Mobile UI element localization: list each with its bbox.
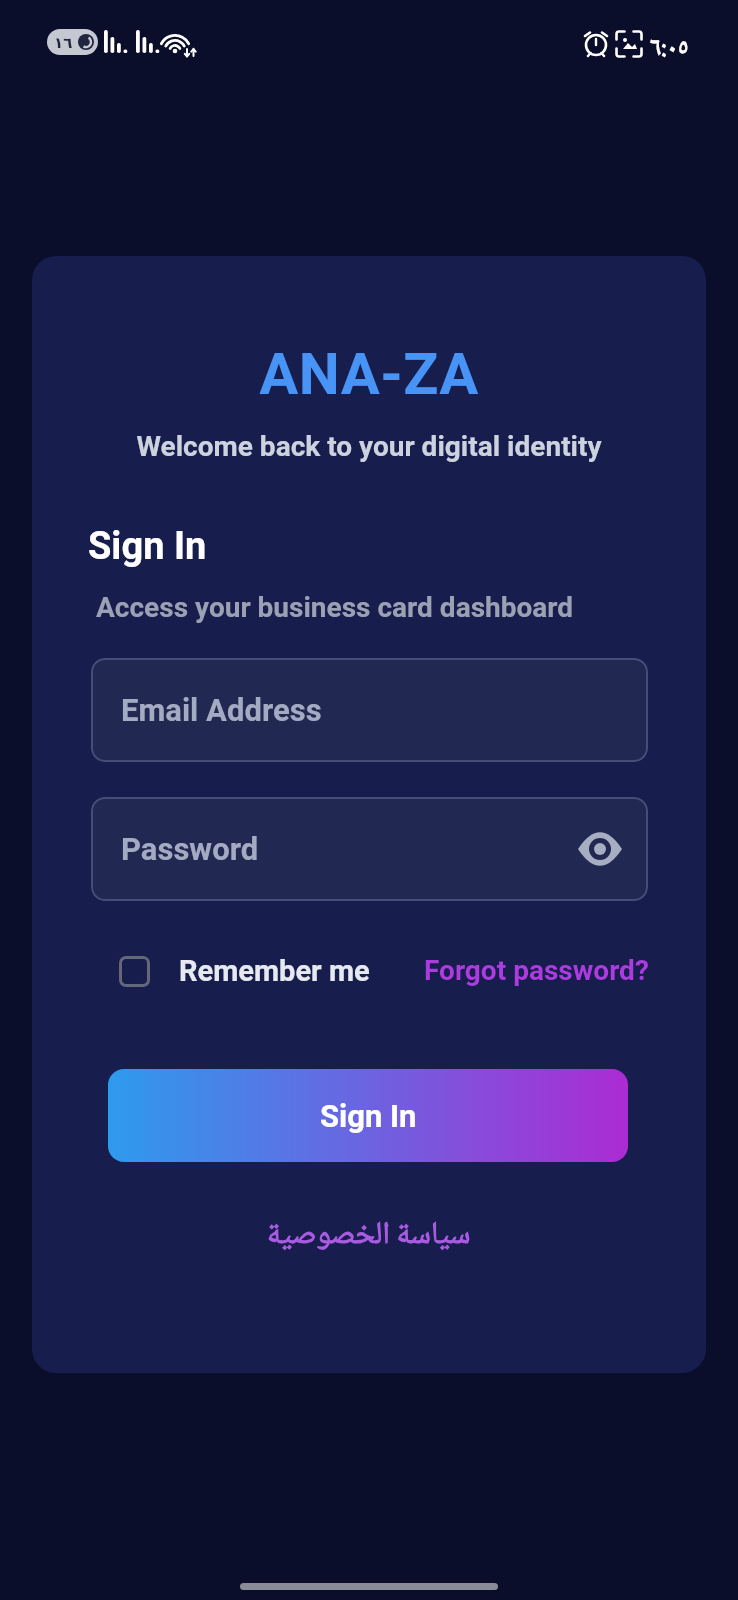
button[interactable]: Email Address xyxy=(91,658,648,762)
staticText: ٦:٠٥ xyxy=(650,28,689,71)
staticText: Access your business card dashboard xyxy=(96,591,574,624)
button[interactable]: Remember me xyxy=(119,954,370,988)
button[interactable]: Forgot password? xyxy=(424,954,649,987)
staticText: Sign In xyxy=(320,1098,417,1134)
staticText: Email Address xyxy=(121,692,322,728)
staticText: ١٦ xyxy=(54,34,73,51)
staticText: Welcome back to your digital identity xyxy=(0,430,738,463)
staticText: ANA-ZA xyxy=(0,340,738,408)
staticText: Password xyxy=(121,831,259,867)
staticText: Sign In xyxy=(88,524,207,569)
staticText: Remember me xyxy=(179,954,370,988)
button[interactable]: Sign In xyxy=(108,1069,628,1162)
button[interactable]: سياسة الخصوصية xyxy=(267,1210,471,1263)
button[interactable]: Password xyxy=(91,797,648,901)
button[interactable] xyxy=(576,825,624,873)
